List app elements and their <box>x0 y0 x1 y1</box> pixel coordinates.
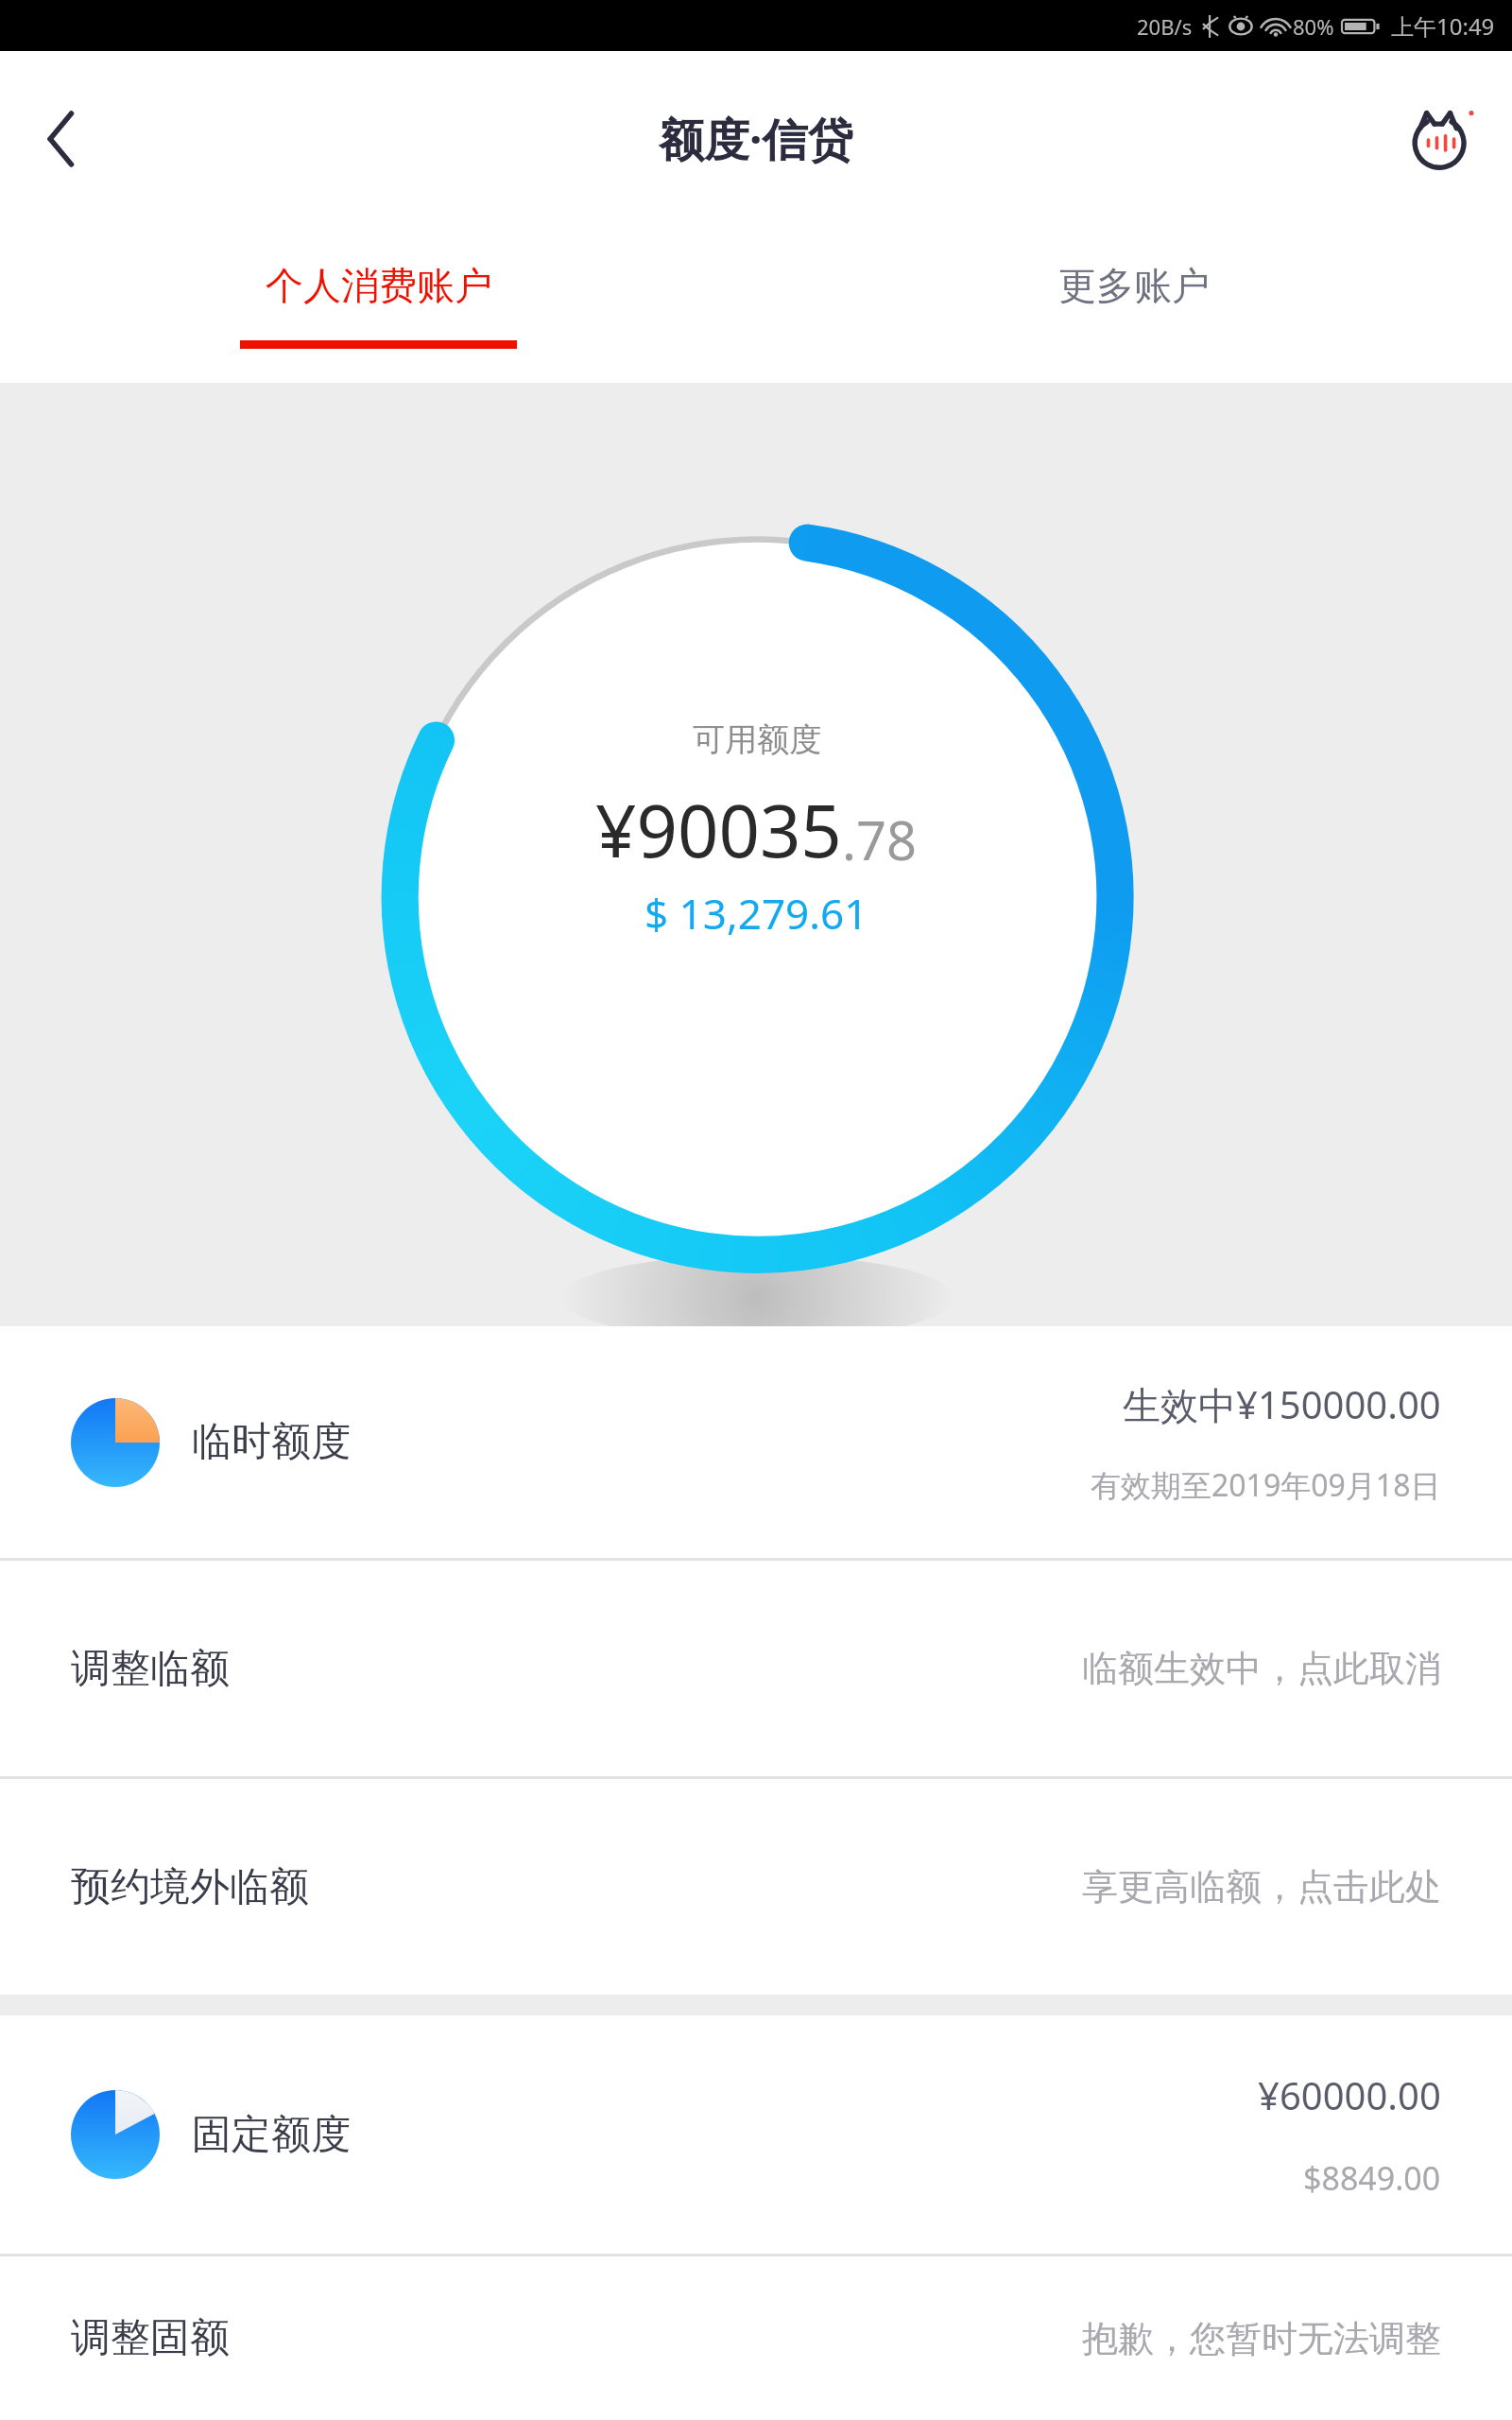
button[interactable]: 调整固额 <box>0 2256 1512 2420</box>
button[interactable]: 调整临额 <box>0 1561 1512 1776</box>
staticText: 抱歉，您暂时无法调整 <box>1082 2316 1441 2361</box>
staticText: 享更高临额，点击此处 <box>1082 1864 1441 1910</box>
button[interactable]: 固定额度 <box>0 2015 1512 2254</box>
staticText: 80% <box>1293 12 1334 41</box>
button[interactable]: 更多账户 <box>756 227 1512 383</box>
button[interactable]: Assistant <box>1397 94 1487 184</box>
staticText: 固定额度 <box>192 2110 351 2160</box>
staticText: 更多账户 <box>1058 262 1210 309</box>
button[interactable]: 个人消费账户 <box>0 227 756 383</box>
staticText: 额度·信贷 <box>659 108 853 170</box>
button[interactable]: 临时额度 <box>0 1326 1512 1558</box>
staticText: 上午10:49 <box>1391 10 1495 42</box>
staticText: 生效中¥150000.00 <box>1123 1378 1441 1430</box>
staticText: 有效期至2019年09月18日 <box>1091 1464 1441 1506</box>
staticText: 20B/s <box>1137 12 1193 41</box>
staticText: 调整固额 <box>71 2313 230 2363</box>
staticText: 临时额度 <box>192 1417 351 1467</box>
staticText: 可用额度 <box>693 719 821 760</box>
staticText: $ 13,279.61 <box>644 885 868 942</box>
staticText: ¥60000.00 <box>1258 2069 1441 2120</box>
button[interactable]: Back <box>23 99 102 179</box>
button[interactable]: 预约境外临额 <box>0 1779 1512 1995</box>
staticText: ¥90035 <box>595 781 842 879</box>
staticText: .78 <box>842 804 918 875</box>
staticText: 临额生效中，点此取消 <box>1082 1646 1441 1691</box>
staticText: $8849.00 <box>1303 2156 1441 2200</box>
staticText: 预约境外临额 <box>71 1862 309 1912</box>
staticText: 调整临额 <box>71 1644 230 1694</box>
staticText: 个人消费账户 <box>266 262 492 309</box>
